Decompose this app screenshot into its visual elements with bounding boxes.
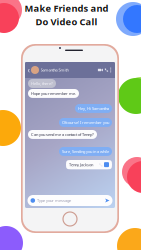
staticText: Ofcourse! I remember you <box>62 120 109 125</box>
staticText: Hey, Hi Samantha <box>78 106 109 111</box>
staticText: Can you send me a contact of Tenny? <box>31 132 94 137</box>
staticText: Hope you remember me. <box>31 91 76 96</box>
button[interactable]: ‹ <box>25 62 115 78</box>
staticText: ‹ <box>27 65 29 75</box>
staticText: Type your message <box>37 198 71 203</box>
staticText: Hello, there? <box>31 81 53 86</box>
button[interactable]: Type your message <box>27 195 112 206</box>
staticText: Make Friends and <box>24 2 108 14</box>
staticText: Tenny Jackson <box>69 162 93 167</box>
staticText: Samantha Smith <box>40 67 68 73</box>
staticText: Do Video Call <box>35 15 97 28</box>
staticText: Sure, Sending you in a while <box>62 149 109 154</box>
